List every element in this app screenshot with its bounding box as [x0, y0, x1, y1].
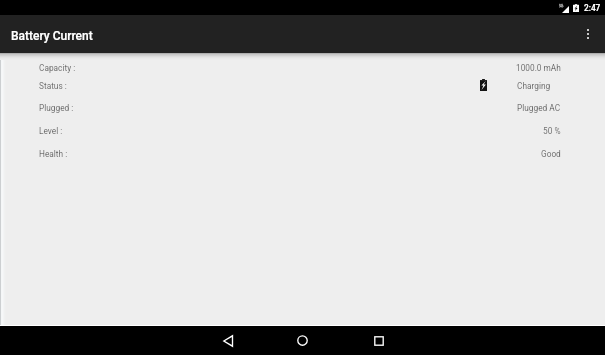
button[interactable]: More options: [571, 15, 605, 53]
staticText: Capacity :: [39, 63, 76, 73]
button[interactable]: Level :: [0, 123, 605, 139]
staticText: Plugged :: [39, 103, 74, 113]
staticText: Charging: [517, 81, 551, 91]
button[interactable]: Status :: [0, 78, 605, 94]
staticText: Level :: [39, 126, 63, 136]
staticText: Health :: [39, 149, 68, 159]
staticText: 50 %: [543, 126, 561, 136]
button[interactable]: Capacity :: [0, 60, 605, 76]
button[interactable]: Health :: [0, 146, 605, 162]
button[interactable]: Recent apps: [364, 326, 393, 355]
button[interactable]: Back: [213, 326, 242, 355]
staticText: Good: [541, 149, 561, 159]
staticText: Plugged AC: [517, 103, 561, 113]
button[interactable]: Plugged :: [0, 100, 605, 116]
button[interactable]: Home: [288, 326, 317, 355]
staticText: Status :: [39, 81, 67, 91]
staticText: 1000.0 mAh: [516, 63, 561, 73]
staticText: Battery Current: [11, 29, 93, 43]
staticText: 2:47: [584, 3, 601, 13]
